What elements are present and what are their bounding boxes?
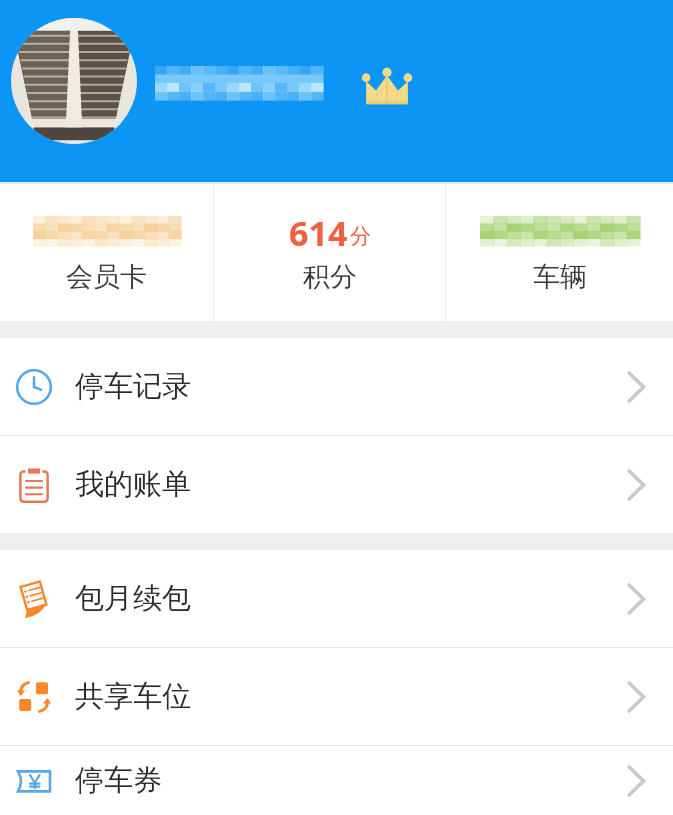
button[interactable]: 车辆 — [446, 184, 673, 294]
button[interactable]: 我的账单 — [0, 436, 673, 533]
staticText: 共享车位 — [75, 678, 191, 715]
button[interactable]: 包月续包 — [0, 550, 673, 647]
button[interactable] — [155, 66, 323, 100]
staticText: 包月续包 — [75, 580, 191, 617]
button[interactable]: 614 — [214, 184, 445, 294]
button[interactable]: VIP member crown — [358, 58, 416, 116]
button[interactable]: 停车记录 — [0, 338, 673, 435]
staticText: 停车券 — [75, 762, 162, 799]
button[interactable]: 会员卡 — [0, 184, 213, 294]
button[interactable]: 停车券 — [0, 746, 673, 815]
staticText: 614 — [289, 210, 348, 252]
staticText: 停车记录 — [75, 368, 191, 405]
staticText: 会员卡 — [66, 260, 147, 294]
button[interactable]: 共享车位 — [0, 648, 673, 745]
staticText: 积分 — [303, 260, 357, 294]
staticText: 车辆 — [533, 260, 587, 294]
button[interactable]: Profile photo — [11, 18, 137, 144]
staticText: 分 — [350, 223, 371, 249]
staticText: 我的账单 — [75, 466, 191, 503]
